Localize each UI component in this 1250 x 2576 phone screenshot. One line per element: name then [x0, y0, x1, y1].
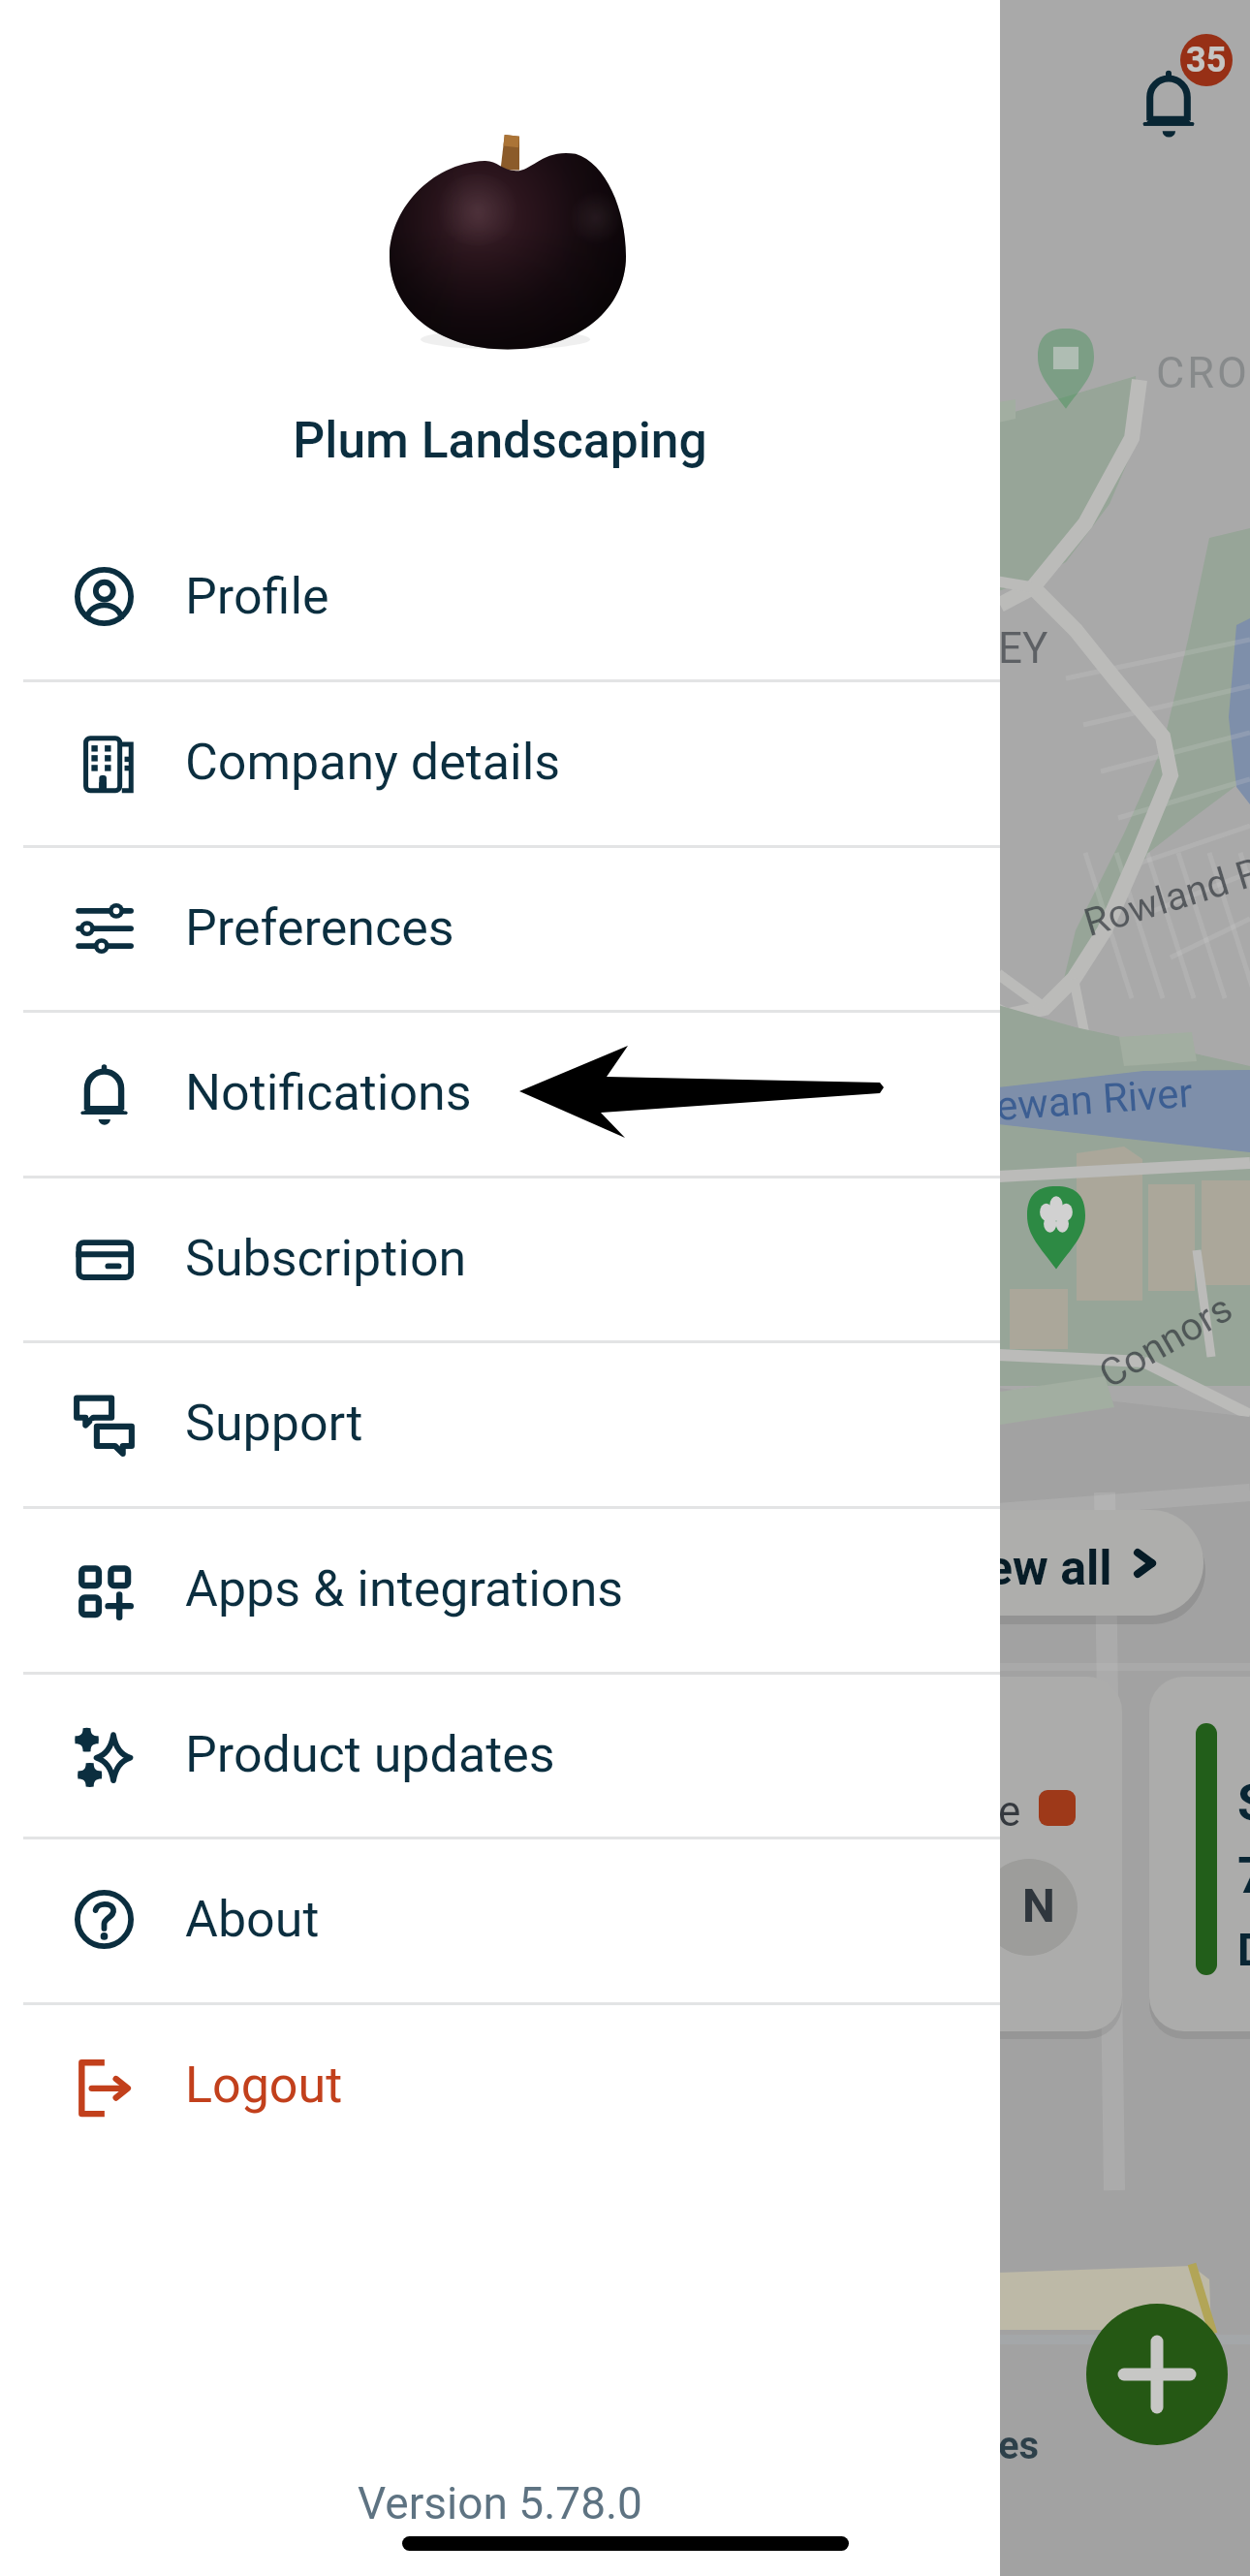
button[interactable]: Subscription [0, 1176, 1000, 1341]
staticText: Version 5.78.0 [358, 2477, 642, 2529]
staticText: EY [998, 623, 1048, 674]
staticText: Rowland R [1079, 849, 1250, 946]
staticText: Apps & integrations [185, 1559, 624, 1618]
staticText: View all [942, 1540, 1112, 1597]
button[interactable]: Support [0, 1340, 1000, 1506]
button[interactable]: Preferences [0, 845, 1000, 1011]
staticText: D [1237, 1924, 1250, 1976]
button[interactable]: Product updates [0, 1672, 1000, 1838]
staticText: 35 [1186, 40, 1227, 80]
staticText: Plum Landscaping [293, 411, 707, 469]
staticText: Preferences [185, 898, 454, 958]
staticText: Notifications [185, 1063, 472, 1122]
button[interactable]: Profile [0, 514, 1000, 679]
staticText: 7 [1237, 1846, 1250, 1905]
staticText: Profile [185, 567, 329, 626]
staticText: Support [185, 1394, 363, 1453]
button[interactable]: Logout [0, 2002, 1000, 2168]
staticText: S [1237, 1774, 1250, 1833]
button[interactable]: Apps & integrations [0, 1506, 1000, 1672]
button[interactable]: Company details [0, 679, 1000, 845]
staticText: Logout [185, 2056, 343, 2115]
staticText: Company details [185, 733, 561, 792]
staticText: es [998, 2423, 1040, 2468]
button[interactable]: About [0, 1837, 1000, 2002]
staticText: N [1022, 1878, 1055, 1932]
staticText: Connors [1091, 1285, 1241, 1397]
staticText: About [185, 1890, 320, 1949]
staticText: CROM [1156, 347, 1250, 398]
staticText: Subscription [185, 1229, 467, 1288]
button[interactable]: Notifications [0, 1010, 1000, 1176]
staticText: ewan River [994, 1069, 1194, 1130]
staticText: e [998, 1786, 1021, 1837]
staticText: Product updates [185, 1725, 555, 1784]
